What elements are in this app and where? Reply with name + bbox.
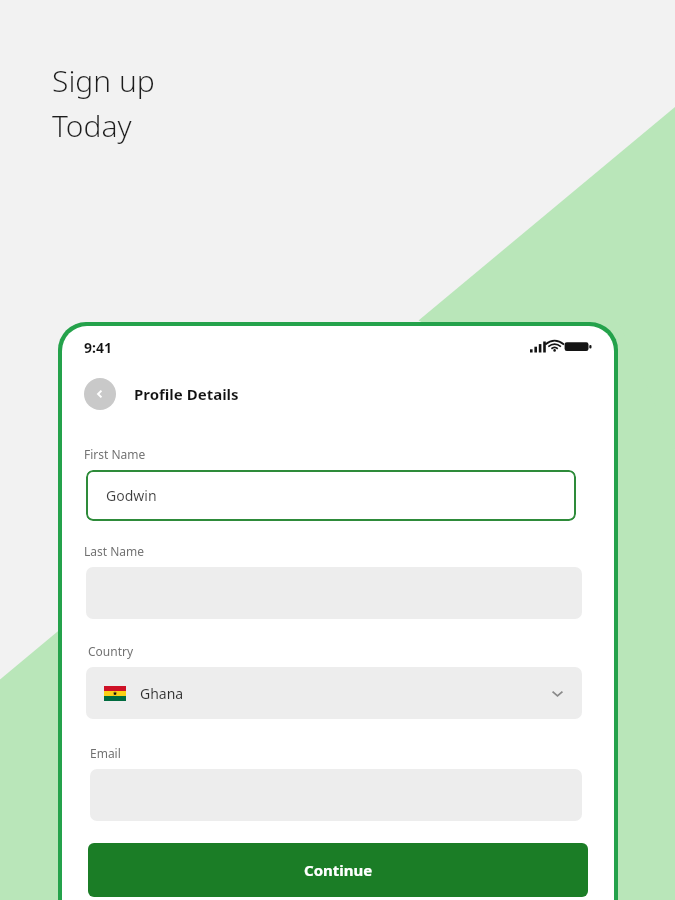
staticText: Sign up: [52, 60, 155, 101]
button[interactable]: Continue: [88, 843, 588, 897]
staticText: Last Name: [84, 543, 145, 559]
staticText: Today: [52, 105, 132, 146]
staticText: Country: [88, 643, 134, 659]
staticText: Godwin: [106, 486, 157, 505]
staticText: First Name: [84, 446, 146, 462]
button[interactable]: Godwin: [86, 470, 576, 521]
staticText: Email: [90, 745, 121, 761]
button[interactable]: Back: [84, 378, 116, 410]
staticText: Continue: [304, 860, 373, 880]
staticText: Profile Details: [134, 384, 239, 404]
staticText: 9:41: [84, 338, 112, 357]
staticText: Ghana: [140, 684, 184, 703]
button[interactable]: Ghana: [86, 667, 582, 719]
